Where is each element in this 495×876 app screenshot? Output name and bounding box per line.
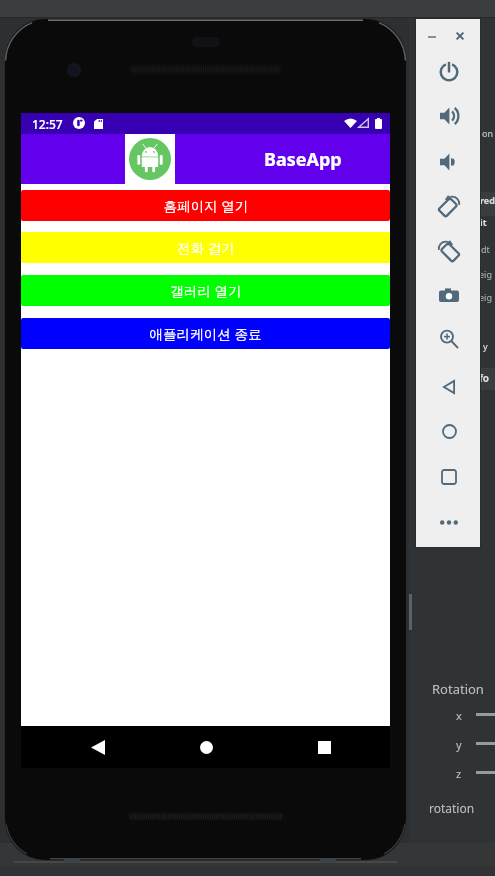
- staticText: y: [456, 737, 462, 752]
- staticText: 전화 걸기: [177, 238, 235, 257]
- staticText: 갤러리 열기: [170, 281, 242, 300]
- staticText: 12:57: [32, 116, 63, 132]
- staticText: x: [456, 708, 462, 723]
- button[interactable]: Rotate right: [433, 235, 465, 267]
- button[interactable]: 전화 걸기: [21, 232, 390, 263]
- button[interactable]: Screenshot: [433, 280, 465, 312]
- button[interactable]: Back: [433, 371, 465, 403]
- staticText: Rotation: [432, 680, 484, 698]
- staticText: on: [482, 127, 494, 139]
- staticText: 홈페이지 열기: [163, 196, 249, 215]
- button[interactable]: Back: [78, 727, 118, 767]
- button[interactable]: Volume down: [433, 146, 465, 178]
- button[interactable]: Power: [433, 56, 465, 88]
- staticText: dt: [481, 243, 490, 255]
- staticText: y: [483, 340, 488, 352]
- button[interactable]: More: [433, 506, 465, 538]
- staticText: z: [456, 766, 462, 781]
- staticText: red: [480, 194, 495, 206]
- button[interactable]: 홈페이지 열기: [21, 190, 390, 221]
- button[interactable]: Rotate left: [433, 190, 465, 222]
- staticText: eig: [479, 268, 492, 280]
- staticText: 애플리케이션 종료: [149, 324, 262, 343]
- button[interactable]: Zoom: [433, 323, 465, 355]
- staticText: BaseApp: [264, 147, 342, 172]
- button[interactable]: 애플리케이션 종료: [21, 318, 390, 349]
- staticText: fo: [479, 371, 490, 385]
- button[interactable]: Volume up: [433, 100, 465, 132]
- staticText: it: [480, 216, 487, 228]
- button[interactable]: Home: [186, 727, 226, 767]
- button[interactable]: 갤러리 열기: [21, 275, 390, 306]
- button[interactable]: Recents: [304, 727, 344, 767]
- staticText: rotation: [429, 800, 475, 816]
- button[interactable]: Home: [433, 415, 465, 447]
- button[interactable]: Overview: [433, 461, 465, 493]
- staticText: eig: [479, 291, 492, 303]
- button[interactable]: Minimize: [422, 27, 442, 47]
- button[interactable]: Close: [450, 26, 470, 46]
